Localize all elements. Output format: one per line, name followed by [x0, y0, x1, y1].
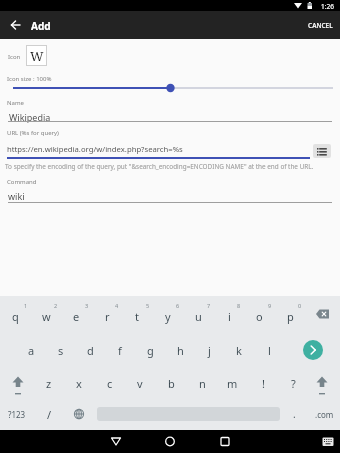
- staticText: ?: [291, 376, 296, 391]
- staticText: 9: [268, 302, 272, 309]
- staticText: /: [47, 407, 52, 422]
- button[interactable]: .: [280, 405, 308, 423]
- staticText: 2: [54, 302, 58, 309]
- staticText: 8: [237, 302, 241, 309]
- button[interactable]: [310, 373, 334, 397]
- button[interactable]: u: [184, 307, 212, 325]
- button[interactable]: Wikipedia: [9, 111, 51, 123]
- button[interactable]: wiki: [8, 190, 25, 202]
- staticText: To specify the encoding of the query, pu…: [5, 162, 314, 171]
- staticText: h: [177, 343, 184, 358]
- button[interactable]: 8: [233, 300, 245, 310]
- staticText: Icon size : 100%: [7, 75, 52, 83]
- button[interactable]: 4: [111, 300, 123, 310]
- button[interactable]: z: [35, 374, 63, 392]
- button[interactable]: 9: [264, 300, 276, 310]
- button[interactable]: !: [249, 374, 277, 392]
- button[interactable]: e: [62, 307, 90, 325]
- staticText: 6: [176, 302, 180, 309]
- button[interactable]: ?: [279, 374, 307, 392]
- button[interactable]: r: [93, 307, 121, 325]
- button[interactable]: [0, 80, 340, 96]
- button[interactable]: 1: [20, 300, 32, 310]
- staticText: j: [208, 343, 211, 358]
- button[interactable]: .com: [308, 405, 340, 423]
- button[interactable]: d: [76, 341, 104, 359]
- staticText: w: [42, 309, 51, 324]
- staticText: ?123: [8, 409, 26, 420]
- button[interactable]: m: [218, 374, 246, 392]
- button[interactable]: h: [166, 341, 194, 359]
- staticText: g: [147, 343, 154, 358]
- button[interactable]: W: [26, 45, 47, 66]
- staticText: r: [105, 309, 110, 324]
- button[interactable]: [310, 305, 334, 323]
- button[interactable]: [214, 431, 236, 452]
- staticText: .: [293, 407, 296, 421]
- staticText: 5: [146, 302, 150, 309]
- staticText: CANCEL: [308, 21, 333, 30]
- button[interactable]: [6, 373, 30, 397]
- button[interactable]: [313, 144, 331, 158]
- button[interactable]: 6: [172, 300, 184, 310]
- button[interactable]: ?123: [2, 405, 32, 423]
- staticText: v: [137, 376, 143, 391]
- button[interactable]: 0: [294, 300, 306, 310]
- button[interactable]: x: [65, 374, 93, 392]
- button[interactable]: 2: [50, 300, 62, 310]
- button[interactable]: g: [136, 341, 164, 359]
- button[interactable]: [303, 340, 323, 360]
- button[interactable]: b: [157, 374, 185, 392]
- staticText: t: [135, 309, 139, 324]
- button[interactable]: p: [276, 307, 304, 325]
- button[interactable]: [318, 434, 338, 450]
- button[interactable]: j: [195, 341, 223, 359]
- button[interactable]: [0, 11, 340, 39]
- button[interactable]: n: [188, 374, 216, 392]
- staticText: s: [58, 343, 64, 358]
- button[interactable]: [159, 431, 181, 452]
- staticText: 1:26: [321, 2, 334, 11]
- staticText: Icon: [8, 53, 21, 61]
- staticText: Name: [7, 99, 24, 107]
- button[interactable]: https://en.wikipedia.org/w/index.php?sea…: [7, 144, 183, 154]
- button[interactable]: 3: [81, 300, 93, 310]
- button[interactable]: q: [1, 307, 29, 325]
- staticText: i: [228, 309, 231, 324]
- button[interactable]: l: [255, 341, 283, 359]
- button[interactable]: y: [154, 307, 182, 325]
- staticText: 4: [115, 302, 119, 309]
- staticText: x: [76, 376, 82, 391]
- button[interactable]: k: [225, 341, 253, 359]
- button[interactable]: f: [106, 341, 134, 359]
- button[interactable]: t: [123, 307, 151, 325]
- staticText: 7: [207, 302, 211, 309]
- button[interactable]: o: [245, 307, 273, 325]
- button[interactable]: w: [32, 307, 60, 325]
- staticText: URL (%s for query): [7, 129, 59, 137]
- staticText: n: [199, 376, 206, 391]
- button[interactable]: [68, 403, 90, 425]
- button[interactable]: v: [126, 374, 154, 392]
- staticText: d: [87, 343, 94, 358]
- button[interactable]: 7: [203, 300, 215, 310]
- button[interactable]: /: [35, 405, 63, 423]
- button[interactable]: i: [215, 307, 243, 325]
- button[interactable]: s: [47, 341, 75, 359]
- staticText: a: [28, 343, 35, 358]
- button[interactable]: [105, 431, 127, 452]
- button[interactable]: 5: [142, 300, 154, 310]
- staticText: m: [227, 376, 238, 391]
- staticText: f: [118, 343, 122, 358]
- button[interactable]: c: [96, 374, 124, 392]
- staticText: k: [236, 343, 242, 358]
- staticText: 1: [24, 302, 28, 309]
- staticText: e: [73, 309, 80, 324]
- button[interactable]: CANCEL: [303, 16, 337, 34]
- staticText: W: [30, 47, 44, 65]
- staticText: b: [168, 376, 175, 391]
- staticText: 0: [298, 302, 302, 309]
- staticText: Add: [31, 19, 51, 33]
- button[interactable]: a: [17, 341, 45, 359]
